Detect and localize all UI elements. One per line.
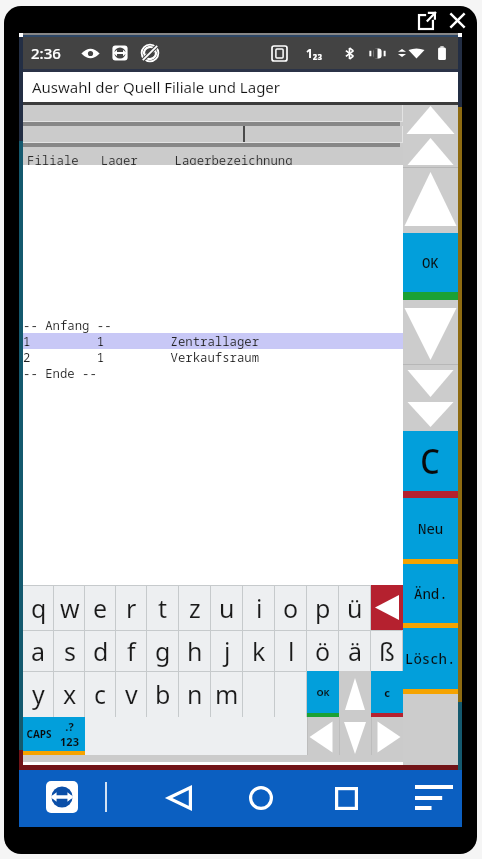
button[interactable]: C [403,431,458,498]
staticText: ü [347,591,363,625]
button[interactable]: l [275,630,307,671]
button[interactable]: Scroll down [403,300,458,365]
staticText: g [155,634,171,668]
button[interactable]: g [147,630,179,671]
staticText: s [64,634,76,668]
button[interactable]: ö [307,630,339,671]
button[interactable]: Down [339,717,371,755]
staticText: Auswahl der Quell Filiale und Lager [32,77,281,97]
staticText: Filiale Lager Lagerbezeichnung [27,152,293,169]
button[interactable] [23,126,403,143]
button[interactable]: z [179,585,211,630]
button[interactable]: 1 1 Zentrallager [23,333,403,349]
button[interactable]: .? 123 [54,717,85,755]
staticText: i [256,591,263,625]
staticText: b [155,677,171,711]
staticText: l [288,634,295,668]
button[interactable]: j [211,630,243,671]
staticText: 2:36 [31,43,61,63]
button[interactable]: Page up [403,105,458,168]
button[interactable]: Lösch. [403,628,458,694]
button[interactable]: ä [339,630,371,671]
staticText: OK [316,686,330,698]
staticText: v [125,677,138,711]
button[interactable]: Änd. [403,564,458,628]
staticText: OK [422,253,439,272]
staticText: -- Anfang -- [23,317,112,333]
button[interactable]: TeamViewer [44,779,80,815]
button[interactable]: w [54,585,85,630]
staticText: d [93,634,109,668]
button[interactable]: Up [339,671,371,717]
staticText: p [315,591,331,625]
staticText: r [126,591,137,625]
staticText: Neu [418,519,444,538]
staticText: c [94,677,107,711]
staticText: Änd. [414,584,448,603]
button[interactable]: s [54,630,85,671]
button[interactable]: v [116,671,147,717]
button[interactable]: OK [307,671,339,717]
staticText: ö [315,634,331,668]
button[interactable]: r [116,585,147,630]
button[interactable]: Back [159,778,199,818]
button[interactable]: OK [403,233,458,300]
staticText: CAPS [26,727,52,741]
button[interactable]: Neu [403,498,458,564]
button[interactable]: Recent apps [326,778,366,818]
staticText: ß [379,634,395,668]
staticText: z [189,591,201,625]
button[interactable]: CAPS [23,717,54,755]
button[interactable]: Close session [445,8,469,32]
staticText: ä [348,634,363,668]
button[interactable]: b [147,671,179,717]
button[interactable]: Home [241,778,281,818]
button[interactable]: ß [371,630,403,671]
button[interactable]: d [85,630,116,671]
staticText: n [187,677,203,711]
button[interactable]: Pop out to window [415,8,439,32]
button[interactable]: x [54,671,85,717]
button[interactable]: a [23,630,54,671]
button[interactable]: e [85,585,116,630]
staticText: h [187,634,203,668]
button[interactable]: p [307,585,339,630]
staticText: t [158,591,168,625]
button[interactable]: Page down [403,365,458,431]
button[interactable]: f [116,630,147,671]
button[interactable]: q [23,585,54,630]
staticText: w [60,591,80,625]
button[interactable]: Right [371,717,403,755]
button[interactable]: t [147,585,179,630]
button[interactable]: k [243,630,275,671]
staticText: q [31,591,47,625]
button[interactable]: c [85,671,116,717]
button[interactable]: Keyboard options [407,778,451,818]
button[interactable]: o [275,585,307,630]
button[interactable]: Left [307,717,339,755]
button[interactable]: Backspace [371,585,403,630]
staticText: a [31,634,46,668]
button[interactable]: -- Anfang -- [23,317,403,333]
staticText: f [127,634,136,668]
button[interactable]: y [23,671,54,717]
staticText: y [32,677,45,711]
button[interactable]: n [179,671,211,717]
button[interactable]: Scroll up [403,168,458,233]
button[interactable]: m [211,671,243,717]
button[interactable]: i [243,585,275,630]
staticText: j [224,634,231,668]
button[interactable]: 2 1 Verkaufsraum [23,349,403,365]
button[interactable]: h [179,630,211,671]
button[interactable]: c [371,671,403,717]
button[interactable]: ü [339,585,371,630]
staticText: o [283,591,299,625]
staticText: C [420,438,441,484]
staticText: 1 1 Zentrallager [23,333,260,349]
staticText: Lösch. [405,649,456,668]
button[interactable] [23,105,403,122]
button[interactable]: -- Ende -- [23,365,403,381]
staticText: e [93,591,108,625]
button[interactable]: u [211,585,243,630]
